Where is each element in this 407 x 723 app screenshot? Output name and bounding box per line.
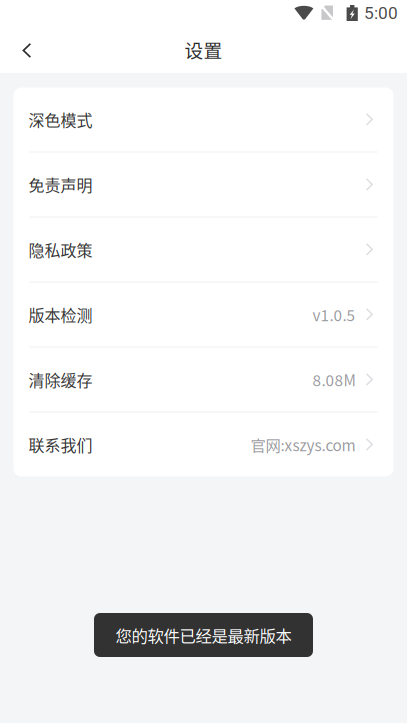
button[interactable]: 深色模式 xyxy=(13,87,393,152)
staticText: 您的软件已经是最新版本 xyxy=(115,623,291,647)
button[interactable]: 清除缓存 xyxy=(13,347,393,412)
staticText: 深色模式 xyxy=(28,108,92,131)
staticText: 清除缓存 xyxy=(28,368,92,391)
button[interactable]: 版本检测 xyxy=(13,282,393,347)
button[interactable]: 隐私政策 xyxy=(13,217,393,282)
staticText: 联系我们 xyxy=(28,433,92,456)
staticText: 8.08M xyxy=(312,368,355,391)
staticText: 官网:xszys.com xyxy=(250,433,355,456)
button[interactable]: 您的软件已经是最新版本 xyxy=(94,613,313,657)
staticText: 隐私政策 xyxy=(28,238,92,261)
staticText: 免责声明 xyxy=(28,173,92,196)
staticText: 设置 xyxy=(184,36,222,63)
button[interactable]: Back xyxy=(0,26,51,73)
button[interactable]: 免责声明 xyxy=(13,152,393,217)
button[interactable]: 联系我们 xyxy=(13,412,393,476)
staticText: 版本检测 xyxy=(28,303,92,326)
staticText: v1.0.5 xyxy=(312,303,355,326)
staticText: 5:00 xyxy=(364,3,398,23)
